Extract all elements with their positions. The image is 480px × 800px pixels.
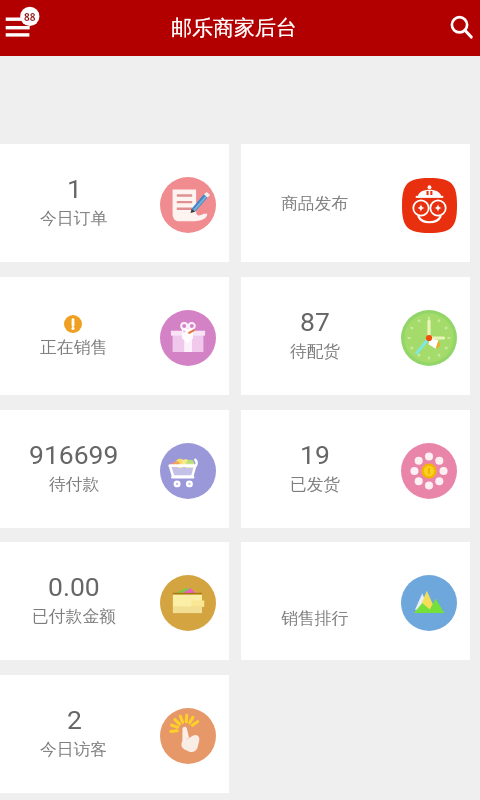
- staticText: 销售排行: [281, 608, 349, 629]
- button[interactable]: 916699: [0, 410, 229, 528]
- button[interactable]: Menu: [0, 0, 52, 52]
- button[interactable]: 商品发布: [241, 144, 470, 262]
- button[interactable]: 2: [0, 675, 229, 793]
- button[interactable]: 1: [0, 144, 229, 262]
- staticText: 1: [67, 173, 82, 204]
- staticText: 正在销售: [40, 337, 108, 358]
- staticText: 邮乐商家后台: [171, 15, 297, 41]
- button[interactable]: 87: [241, 277, 470, 395]
- staticText: 商品发布: [281, 193, 349, 214]
- staticText: 待配货: [290, 341, 341, 362]
- staticText: 今日订单: [40, 208, 108, 229]
- staticText: 88: [24, 10, 36, 24]
- button[interactable]: Search: [428, 0, 480, 52]
- staticText: 19: [300, 439, 330, 470]
- staticText: 待付款: [49, 474, 100, 495]
- staticText: 87: [300, 306, 330, 337]
- staticText: 已发货: [290, 474, 341, 495]
- staticText: 2: [67, 704, 82, 735]
- staticText: 0.00: [48, 571, 100, 602]
- button[interactable]: 销售排行: [241, 542, 470, 660]
- button[interactable]: 正在销售: [0, 277, 229, 395]
- staticText: 已付款金额: [32, 606, 116, 627]
- button[interactable]: 0.00: [0, 542, 229, 660]
- button[interactable]: 19: [241, 410, 470, 528]
- staticText: 916699: [29, 439, 119, 470]
- staticText: 今日访客: [40, 739, 108, 760]
